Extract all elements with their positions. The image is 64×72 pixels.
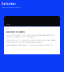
staticText: NEW	[6, 28, 9, 29]
staticText: Invite a teammate, pick a time that work…	[6, 44, 53, 46]
staticText: A shared space where your team can plan …	[6, 34, 55, 38]
staticText: Calendar	[2, 2, 16, 6]
staticText: ROOMS	[6, 24, 11, 25]
staticText: Plan your week at a glance	[2, 6, 21, 8]
staticText: Rooms brings your schedule, your notes a…	[6, 39, 57, 43]
staticText: Welcome to Rooms	[6, 30, 25, 33]
